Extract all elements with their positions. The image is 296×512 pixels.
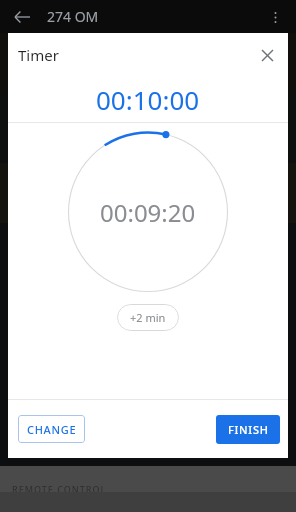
staticText: 00:10:00 xyxy=(96,82,200,117)
staticText: 274 OM xyxy=(47,7,99,26)
button[interactable]: Close xyxy=(253,41,281,69)
button[interactable]: +2 min xyxy=(117,304,179,331)
button[interactable]: FINISH xyxy=(216,415,280,444)
staticText: REMOTE CONTROL xyxy=(12,483,107,495)
staticText: Timer xyxy=(18,45,59,65)
button[interactable]: CHANGE xyxy=(18,415,85,443)
staticText: FINISH xyxy=(228,422,269,437)
button[interactable]: Back xyxy=(10,5,34,29)
button[interactable]: More options xyxy=(264,6,286,28)
staticText: 00:09:20 xyxy=(100,196,196,229)
staticText: +2 min xyxy=(130,310,166,325)
staticText: CHANGE xyxy=(27,422,77,437)
